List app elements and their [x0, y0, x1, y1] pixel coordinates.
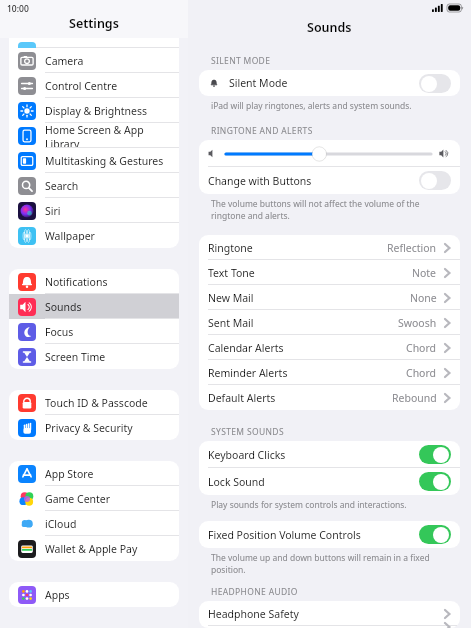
staticText: App Store: [45, 467, 94, 481]
staticText: Headphone Safety: [208, 607, 299, 621]
button[interactable]: Focus: [9, 319, 179, 344]
button[interactable]: Headphone Safety: [199, 601, 460, 626]
button[interactable]: Search: [9, 173, 179, 198]
staticText: Chord: [406, 341, 437, 355]
button[interactable]: Change with Buttons: [199, 167, 460, 194]
staticText: Play sounds for system controls and inte…: [211, 499, 407, 511]
staticText: Reflection: [387, 241, 437, 255]
button[interactable]: Wallpaper: [9, 223, 179, 248]
button[interactable]: Fixed Position Volume Controls: [199, 521, 460, 548]
staticText: SYSTEM SOUNDS: [211, 426, 284, 438]
button[interactable]: Off: [419, 171, 451, 190]
staticText: Settings: [69, 15, 119, 32]
staticText: Note: [412, 266, 437, 280]
staticText: iCloud: [45, 517, 77, 531]
staticText: Change with Buttons: [208, 174, 312, 188]
staticText: Sent Mail: [208, 316, 254, 330]
staticText: Home Screen & App Library: [45, 123, 179, 148]
staticText: Game Center: [45, 492, 111, 506]
staticText: Reminder Alerts: [208, 366, 288, 380]
button[interactable]: Reminder Alerts: [199, 360, 460, 385]
staticText: SILENT MODE: [211, 55, 271, 67]
button[interactable]: Home Screen & App Library: [9, 123, 179, 148]
button[interactable]: On: [419, 472, 451, 491]
staticText: Siri: [45, 204, 61, 218]
button[interactable]: Calendar Alerts: [199, 335, 460, 360]
button[interactable]: Privacy & Security: [9, 415, 179, 440]
button[interactable]: Wallet & Apple Pay: [9, 536, 179, 561]
staticText: Swoosh: [398, 316, 437, 330]
button[interactable]: Sounds: [9, 294, 179, 319]
button[interactable]: Text Tone: [199, 260, 460, 285]
staticText: Text Tone: [208, 266, 255, 280]
button[interactable]: New Mail: [199, 285, 460, 310]
button[interactable]: iCloud: [9, 511, 179, 536]
button[interactable]: Apps: [9, 582, 179, 607]
staticText: Default Alerts: [208, 391, 276, 405]
staticText: None: [410, 291, 437, 305]
staticText: Multitasking & Gestures: [45, 154, 164, 168]
button[interactable]: App Store: [9, 461, 179, 486]
button[interactable]: [226, 146, 431, 162]
staticText: Wallpaper: [45, 229, 95, 243]
staticText: Display & Brightness: [45, 104, 148, 118]
staticText: Notifications: [45, 275, 108, 289]
button[interactable]: Camera: [9, 48, 179, 73]
button[interactable]: Ringtone: [199, 235, 460, 260]
button[interactable]: Touch ID & Passcode: [9, 390, 179, 415]
staticText: The volume up and down buttons will rema…: [211, 552, 432, 576]
staticText: Keyboard Clicks: [208, 448, 286, 462]
button[interactable]: Keyboard Clicks: [199, 441, 460, 468]
button[interactable]: Notifications: [9, 269, 179, 294]
staticText: Camera: [45, 54, 84, 68]
button[interactable]: On: [419, 445, 451, 464]
staticText: Screen Time: [45, 350, 106, 364]
staticText: Search: [45, 179, 79, 193]
button[interactable]: Lock Sound: [199, 468, 460, 495]
button[interactable]: Display & Brightness: [9, 98, 179, 123]
button[interactable]: Multitasking & Gestures: [9, 148, 179, 173]
button[interactable]: Sent Mail: [199, 310, 460, 335]
staticText: Sounds: [307, 19, 352, 36]
button[interactable]: Off: [419, 74, 451, 93]
staticText: Sounds: [45, 300, 82, 314]
staticText: iPad will play ringtones, alerts and sys…: [211, 100, 412, 112]
staticText: Silent Mode: [229, 76, 288, 90]
staticText: RINGTONE AND ALERTS: [211, 125, 313, 137]
staticText: Touch ID & Passcode: [45, 396, 148, 410]
staticText: Lock Sound: [208, 475, 265, 489]
button[interactable]: Personalised Spatial Audio: [199, 626, 460, 628]
staticText: Fixed Position Volume Controls: [208, 528, 361, 542]
staticText: Apps: [45, 588, 70, 602]
staticText: Chord: [406, 366, 437, 380]
staticText: HEADPHONE AUDIO: [211, 586, 298, 598]
staticText: The volume buttons will not affect the v…: [211, 198, 432, 222]
staticText: Ringtone: [208, 241, 253, 255]
staticText: Wallet & Apple Pay: [45, 542, 138, 556]
button[interactable]: Default Alerts: [199, 385, 460, 410]
staticText: New Mail: [208, 291, 254, 305]
button[interactable]: Game Center: [9, 486, 179, 511]
staticText: Control Centre: [45, 79, 118, 93]
button[interactable]: Siri: [9, 198, 179, 223]
staticText: Rebound: [392, 391, 437, 405]
staticText: Focus: [45, 325, 74, 339]
staticText: Privacy & Security: [45, 421, 133, 435]
staticText: Calendar Alerts: [208, 341, 284, 355]
staticText: 10:00: [7, 3, 29, 15]
button[interactable]: Control Centre: [9, 73, 179, 98]
button[interactable]: Screen Time: [9, 344, 179, 369]
button[interactable]: On: [419, 525, 451, 544]
button[interactable]: Silent Mode: [199, 70, 460, 96]
